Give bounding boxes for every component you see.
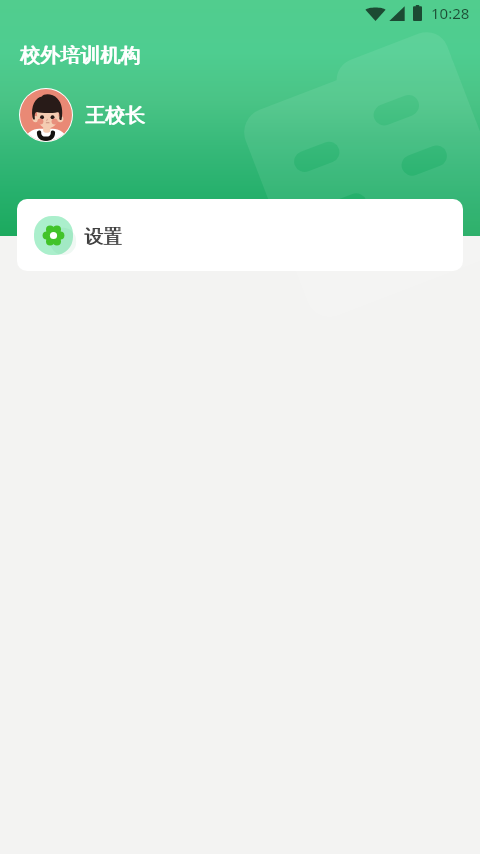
staticText: 设置 — [84, 225, 122, 249]
staticText: 校外培训机构 — [20, 43, 140, 68]
staticText: 10:28 — [431, 3, 470, 23]
staticText: 校外培训机构 — [21, 43, 141, 68]
staticText: 王校长 — [86, 103, 146, 128]
button[interactable]: 设置 — [17, 199, 463, 271]
staticText: 王校长 — [85, 103, 145, 128]
staticText: 设置 — [85, 225, 123, 249]
